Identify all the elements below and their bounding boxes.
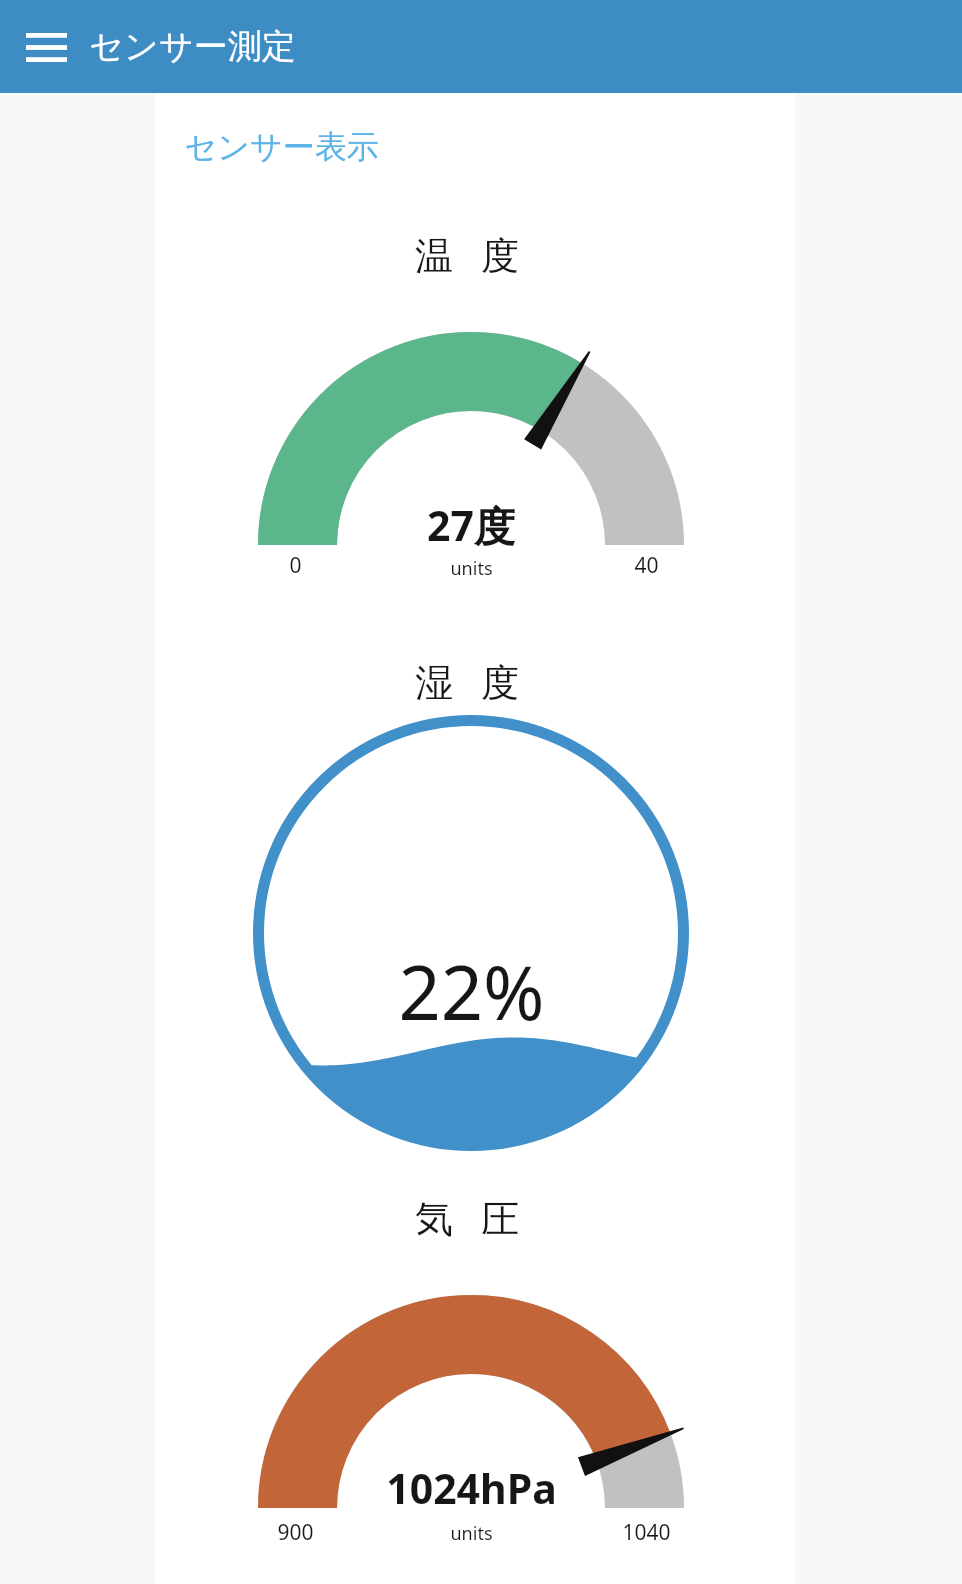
staticText: 温 度 [415,228,528,280]
staticText: 1040 [622,1518,671,1547]
staticText: 気 圧 [415,1191,528,1243]
staticText: 0 [289,551,302,580]
staticText: 900 [277,1518,314,1547]
button[interactable]: Open navigation menu [17,18,75,76]
staticText: 40 [634,551,659,580]
staticText: 1024hPa [386,1460,557,1516]
staticText: units [450,556,493,581]
staticText: センサー表示 [184,127,379,167]
staticText: 22% [398,941,545,1042]
staticText: units [450,1521,493,1546]
staticText: センサー測定 [89,25,296,68]
staticText: 27度 [427,497,515,553]
staticText: 湿 度 [415,655,528,707]
